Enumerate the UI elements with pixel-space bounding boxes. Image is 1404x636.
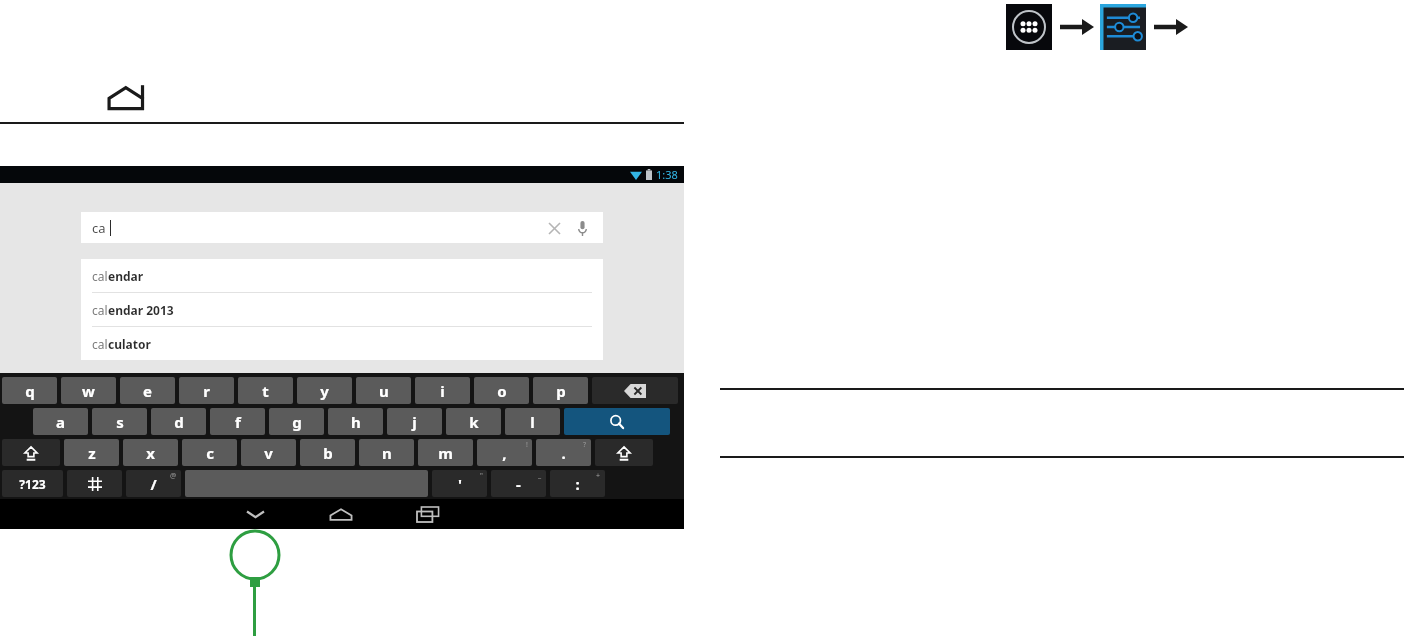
button[interactable]: z (64, 439, 119, 466)
button[interactable]: b (300, 439, 355, 466)
button[interactable]: cal (81, 327, 603, 360)
button[interactable]: Clear (543, 217, 565, 239)
other: Delete (624, 384, 646, 398)
button[interactable]: cal (81, 259, 603, 292)
staticText: ? (583, 440, 587, 450)
button[interactable]: l (505, 408, 560, 435)
button[interactable]: a (33, 408, 88, 435)
button[interactable]: - (491, 470, 546, 497)
staticText: . (561, 443, 566, 463)
staticText: i (440, 381, 445, 401)
button[interactable]: All apps (1006, 4, 1052, 50)
button[interactable]: Home (326, 499, 356, 529)
staticText: t (262, 381, 269, 401)
button[interactable]: cal (81, 293, 603, 326)
staticText: x (146, 443, 155, 463)
other: Home (106, 84, 150, 114)
staticText: , (502, 443, 507, 463)
button[interactable]: : (550, 470, 605, 497)
staticText: ?123 (19, 476, 46, 492)
staticText: o (497, 381, 507, 401)
button[interactable]: ' (432, 470, 487, 497)
button[interactable]: h (328, 408, 383, 435)
button[interactable]: / (126, 470, 181, 497)
button[interactable]: s (92, 408, 147, 435)
staticText: @ (170, 471, 177, 481)
button[interactable]: r (179, 377, 234, 404)
staticText: cal (92, 268, 108, 284)
staticText: - (516, 474, 521, 494)
staticText: j (412, 412, 417, 432)
button[interactable]: u (356, 377, 411, 404)
button[interactable]: Input options (67, 470, 122, 497)
staticText: : (575, 474, 580, 494)
staticText: 1:38 (656, 167, 678, 182)
staticText: endar 2013 (108, 302, 174, 318)
button[interactable]: , (477, 439, 532, 466)
button[interactable]: . (536, 439, 591, 466)
staticText: cal (92, 336, 108, 352)
staticText: h (351, 412, 361, 432)
button[interactable]: e (120, 377, 175, 404)
button[interactable]: Shift (595, 439, 653, 466)
staticText: a (56, 412, 65, 432)
button[interactable]: j (387, 408, 442, 435)
button[interactable]: Settings (1100, 4, 1146, 50)
button[interactable]: k (446, 408, 501, 435)
staticText: ca (92, 219, 106, 237)
staticText: c (206, 443, 214, 463)
button[interactable]: Delete (592, 377, 678, 404)
staticText: g (292, 412, 302, 432)
staticText: / (150, 474, 157, 494)
staticText: " (480, 471, 483, 481)
staticText: f (235, 412, 241, 432)
other: Input options (88, 477, 102, 491)
button[interactable]: Hide keyboard (240, 499, 270, 529)
staticText: r (203, 381, 210, 401)
staticText: culator (108, 336, 151, 352)
button[interactable]: ?123 (2, 470, 63, 497)
other: Shift (22, 444, 40, 462)
button[interactable]: f (210, 408, 265, 435)
staticText: d (174, 412, 184, 432)
staticText: z (88, 443, 96, 463)
staticText: endar (108, 268, 144, 284)
button[interactable]: o (474, 377, 529, 404)
button[interactable]: Search (564, 408, 670, 435)
button[interactable]: c (182, 439, 237, 466)
staticText: s (116, 412, 124, 432)
staticText: cal (92, 302, 108, 318)
staticText: e (143, 381, 152, 401)
other: Shift (615, 444, 633, 462)
button[interactable]: p (533, 377, 588, 404)
button[interactable]: d (151, 408, 206, 435)
button[interactable]: Shift (2, 439, 60, 466)
button[interactable]: ca (81, 212, 603, 243)
staticText: l (530, 412, 535, 432)
staticText: ! (526, 440, 528, 450)
button[interactable]: t (238, 377, 293, 404)
button[interactable]: Recent apps (413, 499, 443, 529)
button[interactable]: v (241, 439, 296, 466)
other: Search (609, 414, 625, 430)
staticText: b (323, 443, 333, 463)
staticText: _ (538, 471, 542, 481)
button[interactable]: w (61, 377, 116, 404)
staticText: k (469, 412, 479, 432)
staticText: m (438, 443, 453, 463)
staticText: ' (458, 474, 462, 494)
staticText: p (556, 381, 566, 401)
staticText: n (382, 443, 392, 463)
button[interactable]: n (359, 439, 414, 466)
button[interactable]: y (297, 377, 352, 404)
staticText: w (82, 381, 95, 401)
button[interactable]: g (269, 408, 324, 435)
button[interactable]: x (123, 439, 178, 466)
button[interactable]: q (2, 377, 57, 404)
button[interactable]: i (415, 377, 470, 404)
button[interactable]: Voice search (571, 217, 593, 239)
button[interactable]: m (418, 439, 473, 466)
staticText: q (25, 381, 35, 401)
staticText: y (320, 381, 329, 401)
